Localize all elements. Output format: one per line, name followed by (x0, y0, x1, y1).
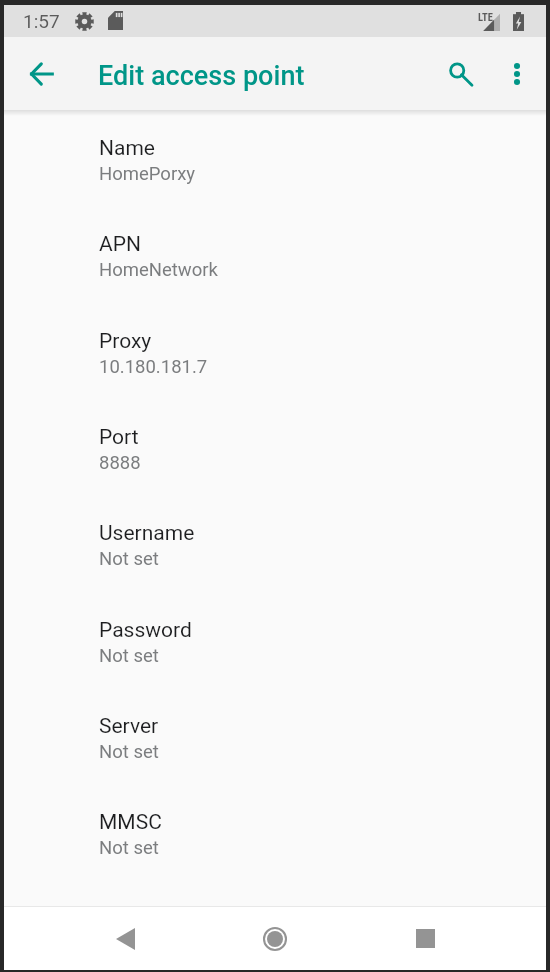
staticText: 8888 (99, 452, 141, 474)
button[interactable]: Username (4, 516, 546, 612)
button[interactable]: Back (101, 915, 149, 963)
staticText: Not set (99, 645, 159, 667)
button[interactable]: More options (493, 50, 541, 98)
staticText: Edit access point (98, 60, 305, 92)
staticText: MMSC (99, 810, 162, 835)
staticText: Name (99, 136, 155, 161)
button[interactable]: MMSC (4, 805, 546, 901)
staticText: Not set (99, 548, 159, 570)
button[interactable]: Port (4, 420, 546, 516)
staticText: Password (99, 618, 192, 643)
staticText: Username (99, 521, 195, 546)
staticText: Proxy (99, 329, 152, 354)
button[interactable]: APN (4, 227, 546, 323)
staticText: LTE (478, 11, 493, 23)
staticText: Not set (99, 837, 159, 859)
staticText: HomePorxy (99, 163, 196, 185)
button[interactable]: Navigate up (17, 50, 65, 98)
button[interactable]: Password (4, 613, 546, 709)
button[interactable]: Server (4, 709, 546, 805)
button[interactable]: Name (4, 131, 546, 227)
button[interactable]: Proxy (4, 324, 546, 420)
staticText: Server (99, 714, 159, 739)
staticText: 1:57 (23, 10, 60, 32)
staticText: 10.180.181.7 (99, 356, 208, 378)
button[interactable]: Recent apps (401, 914, 449, 962)
button[interactable]: Search (437, 51, 485, 99)
staticText: Not set (99, 741, 159, 763)
staticText: HomeNetwork (99, 259, 218, 281)
staticText: APN (99, 232, 141, 257)
staticText: Port (99, 425, 139, 450)
button[interactable]: Home (251, 915, 299, 963)
